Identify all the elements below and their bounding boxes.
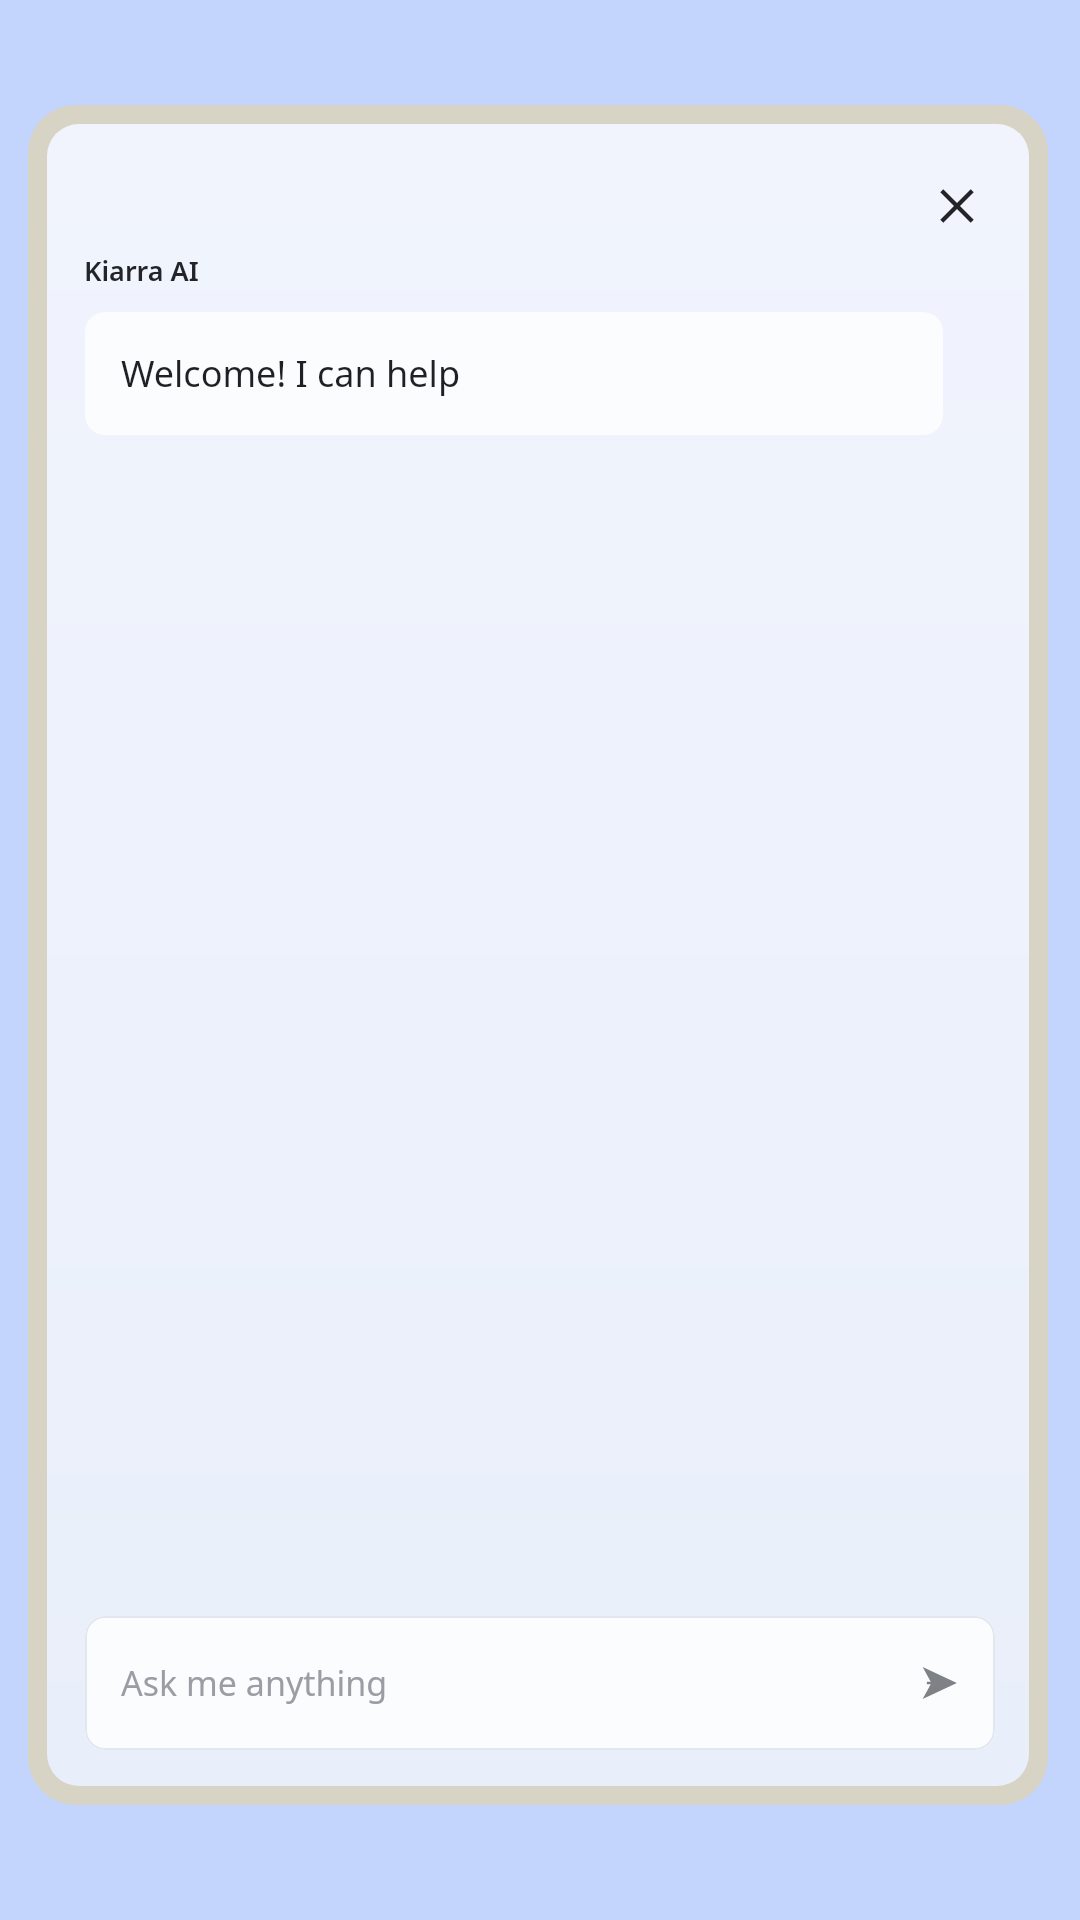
staticText: Welcome! I can help — [121, 349, 461, 398]
button[interactable]: Ask me anything — [85, 1616, 995, 1750]
button[interactable]: Close — [911, 160, 1003, 252]
staticText: Kiarra AI — [84, 252, 199, 289]
button[interactable]: Welcome! I can help — [85, 312, 943, 435]
staticText: Ask me anything — [121, 1660, 388, 1706]
button[interactable]: Send — [901, 1645, 977, 1721]
